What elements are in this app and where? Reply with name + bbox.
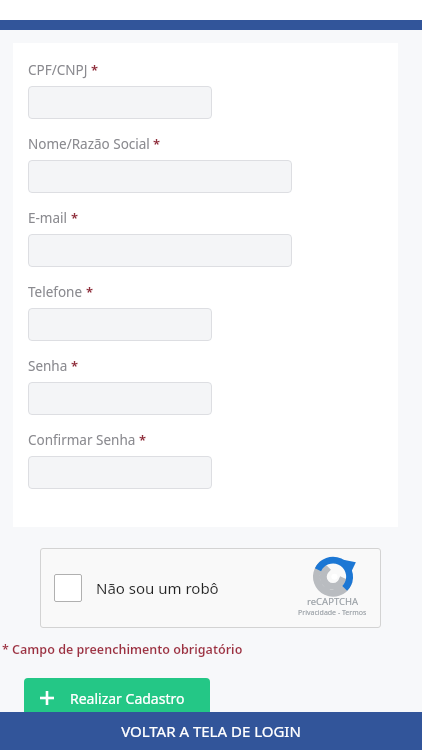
staticText: CPF/CNPJ	[28, 61, 88, 79]
staticText: * Campo de preenchimento obrigatório	[2, 641, 243, 658]
staticText: E-mail	[28, 209, 68, 227]
button[interactable]: VOLTAR A TELA DE LOGIN	[0, 712, 422, 750]
staticText: *	[153, 135, 161, 153]
button[interactable]	[28, 86, 212, 119]
staticText: Confirmar Senha	[28, 431, 136, 449]
button[interactable]	[28, 234, 292, 267]
button[interactable]	[28, 456, 212, 489]
button[interactable]	[28, 382, 212, 415]
staticText: Senha	[28, 357, 68, 375]
staticText: Privacidade - Termos	[298, 608, 367, 618]
staticText: Nome/Razão Social	[28, 135, 150, 153]
staticText: VOLTAR A TELA DE LOGIN	[121, 721, 301, 741]
staticText: *	[139, 431, 147, 449]
staticText: *	[71, 209, 79, 227]
button[interactable]: Realizar Cadastro	[24, 678, 210, 718]
staticText: *	[86, 283, 94, 301]
staticText: reCAPTCHA	[307, 595, 359, 608]
button[interactable]: Não sou um robô	[40, 548, 381, 628]
staticText: *	[91, 61, 99, 79]
staticText: Realizar Cadastro	[70, 689, 185, 708]
staticText: *	[71, 357, 79, 375]
button[interactable]	[28, 308, 212, 341]
button[interactable]	[28, 160, 292, 193]
staticText: Telefone	[28, 283, 83, 301]
button[interactable]: Não sou um robô	[54, 574, 82, 602]
staticText: Não sou um robô	[96, 578, 219, 598]
